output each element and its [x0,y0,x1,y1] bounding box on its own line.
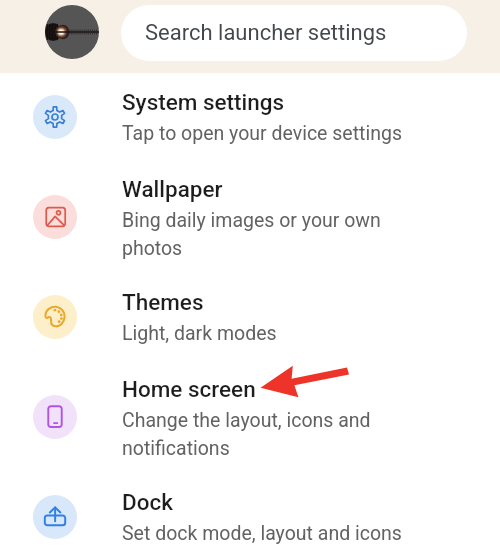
staticText: Light, dark modes [122,318,277,346]
staticText: Set dock mode, layout and icons [122,518,402,546]
button[interactable]: Search launcher settings [121,5,467,61]
button[interactable]: Profile [45,5,99,59]
staticText: Dock [122,489,173,515]
button[interactable]: System settings [0,87,500,174]
staticText: Themes [122,289,204,315]
button[interactable]: Themes [0,287,500,374]
staticText: Search launcher settings [145,20,387,46]
staticText: Tap to open your device settings [122,118,402,146]
staticText: Home screen [122,376,256,402]
staticText: Bing daily images or your own photos [122,205,442,261]
staticText: Change the layout, icons and notificatio… [122,405,442,461]
button[interactable]: Dock [0,487,500,556]
staticText: Wallpaper [122,176,223,202]
button[interactable]: Home screen [0,374,500,487]
button[interactable]: Wallpaper [0,174,500,287]
staticText: System settings [122,89,285,115]
